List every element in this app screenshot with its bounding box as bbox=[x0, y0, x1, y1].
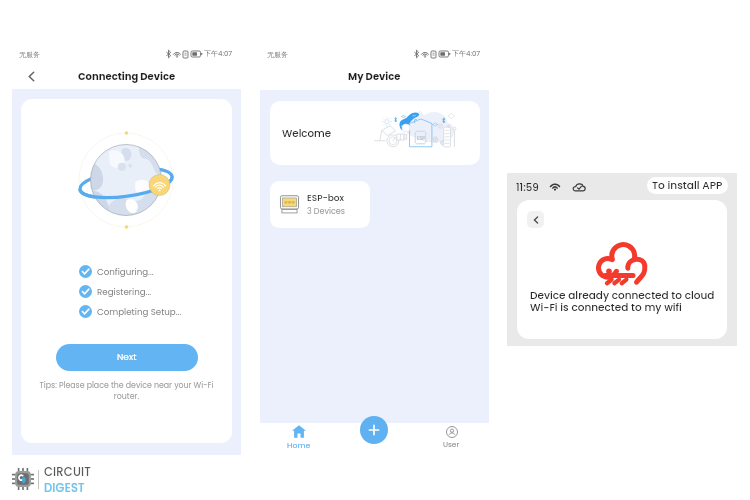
button[interactable]: Back bbox=[17, 63, 45, 89]
staticText: 无服务 bbox=[19, 50, 40, 59]
staticText: 下午4:07 bbox=[452, 49, 481, 59]
button[interactable]: Welcome bbox=[270, 101, 480, 165]
button[interactable]: Home bbox=[260, 423, 337, 456]
staticText: CIRCUIT bbox=[44, 464, 91, 480]
staticText: Tips: Please place the device near your … bbox=[36, 380, 217, 402]
staticText: ESP bbox=[416, 135, 426, 141]
staticText: Registering... bbox=[97, 286, 152, 298]
staticText: Home bbox=[287, 440, 311, 451]
staticText: ESP-box bbox=[307, 192, 345, 205]
button[interactable]: Add device bbox=[360, 416, 388, 444]
button[interactable]: User bbox=[413, 423, 489, 456]
staticText: Device already connected to cloud Wi-Fi … bbox=[530, 288, 715, 314]
button[interactable]: ESP-box bbox=[270, 181, 370, 228]
staticText: 11:59 bbox=[516, 180, 539, 194]
staticText: 下午4:07 bbox=[204, 49, 233, 59]
button[interactable]: To install APP bbox=[647, 177, 728, 194]
staticText: 3 Devices bbox=[307, 206, 345, 217]
staticText: Welcome bbox=[282, 126, 332, 140]
staticText: Next bbox=[117, 351, 137, 364]
staticText: 无服务 bbox=[267, 50, 288, 59]
button[interactable]: Next bbox=[56, 344, 198, 371]
staticText: DIGEST bbox=[44, 480, 85, 494]
staticText: To install APP bbox=[652, 178, 723, 193]
staticText: Configuring... bbox=[97, 266, 154, 278]
staticText: My Device bbox=[348, 69, 401, 83]
staticText: Connecting Device bbox=[78, 69, 176, 83]
button[interactable]: Back bbox=[527, 211, 544, 228]
staticText: User bbox=[443, 439, 460, 449]
staticText: Completing Setup... bbox=[97, 306, 182, 318]
